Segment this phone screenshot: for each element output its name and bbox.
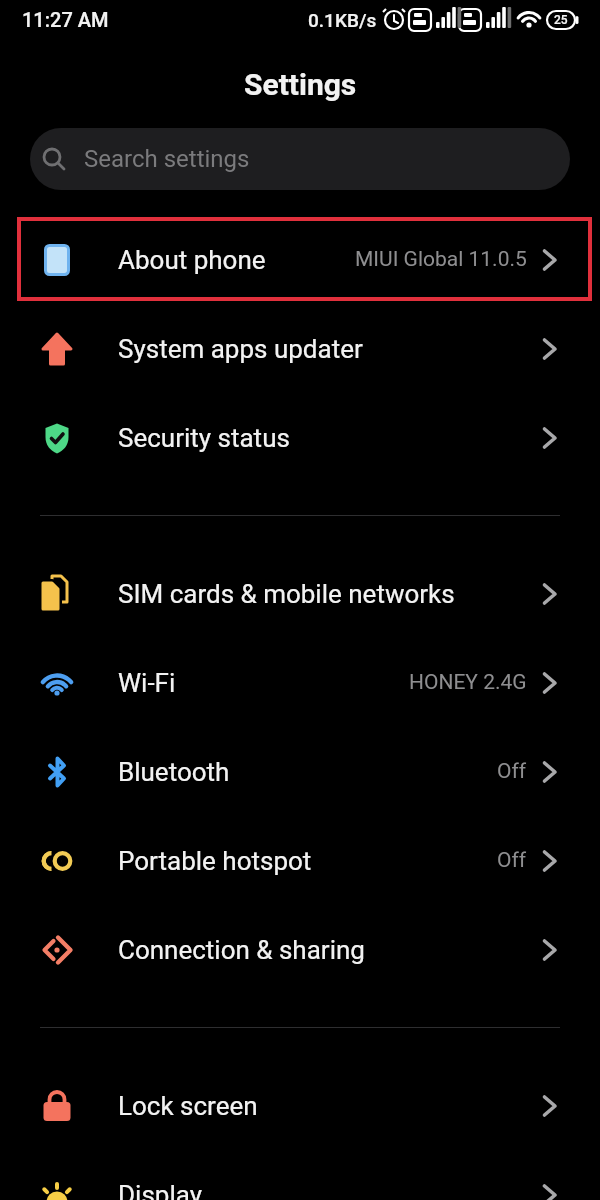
button[interactable]: Display [0, 1150, 600, 1200]
button[interactable]: About phone [0, 215, 600, 304]
button[interactable]: Wi-Fi [0, 638, 600, 727]
staticText: System apps updater [118, 334, 363, 364]
staticText: Search settings [84, 145, 250, 173]
staticText: Lock screen [118, 1091, 258, 1121]
button[interactable]: Lock screen [0, 1061, 600, 1150]
staticText: Wi-Fi [118, 668, 176, 698]
staticText: Display [118, 1180, 202, 1200]
staticText: 0.1KB/s [308, 9, 377, 31]
button[interactable]: Bluetooth [0, 727, 600, 816]
button[interactable]: Portable hotspot [0, 816, 600, 905]
button[interactable]: System apps updater [0, 304, 600, 393]
button[interactable]: Connection & sharing [0, 905, 600, 994]
staticText: Portable hotspot [118, 846, 312, 876]
staticText: Off [497, 759, 527, 784]
button[interactable]: Security status [0, 393, 600, 482]
staticText: MIUI Global 11.0.5 [355, 247, 527, 272]
staticText: Off [497, 848, 527, 873]
button[interactable]: SIM cards & mobile networks [0, 549, 600, 638]
staticText: Bluetooth [118, 757, 230, 787]
staticText: Connection & sharing [118, 935, 365, 965]
staticText: About phone [118, 245, 266, 275]
staticText: 25 [554, 13, 568, 27]
staticText: SIM cards & mobile networks [118, 579, 455, 609]
staticText: Settings [244, 67, 357, 102]
button[interactable]: Search settings [30, 128, 570, 190]
staticText: HONEY 2.4G [409, 670, 527, 695]
staticText: 11:27 AM [22, 8, 109, 31]
staticText: Security status [118, 423, 290, 453]
